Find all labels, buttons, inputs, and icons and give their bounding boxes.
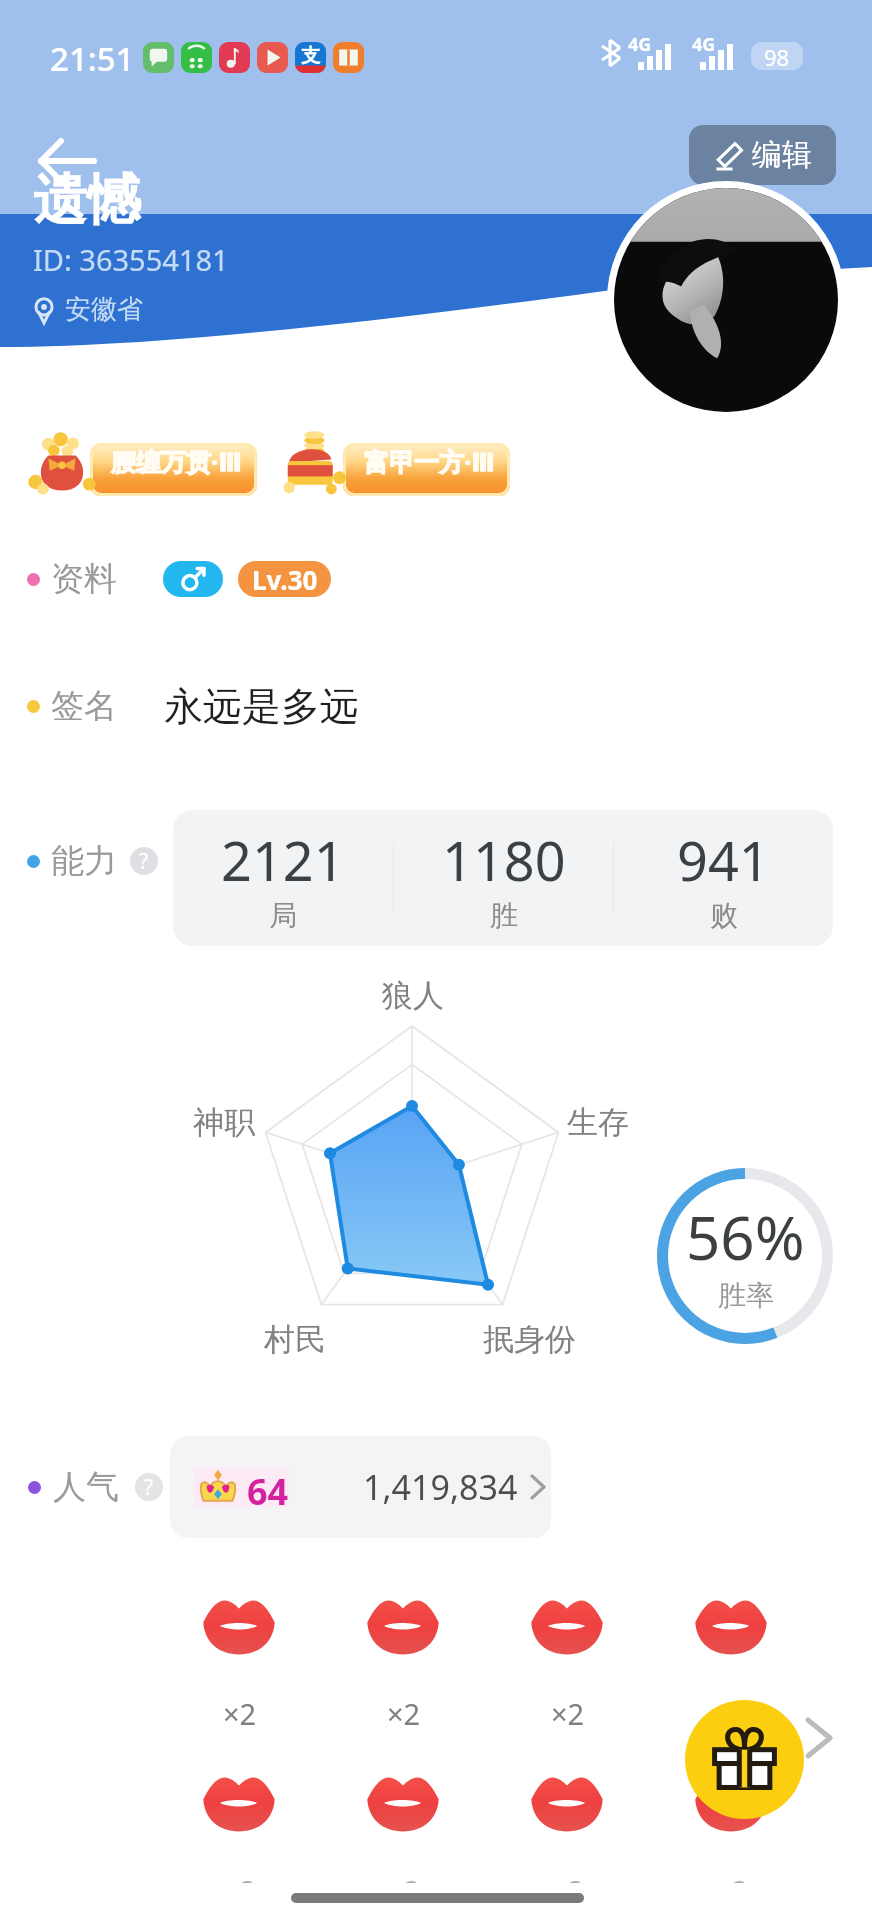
staticText: 生存	[567, 1103, 629, 1142]
staticText: 胜率	[718, 1278, 774, 1313]
staticText: Lv.30	[252, 562, 318, 597]
staticText: ID: 363554181	[33, 240, 229, 279]
staticText: ?	[144, 1473, 154, 1501]
button[interactable]: Help about ability	[130, 847, 158, 875]
button[interactable]: Help about popularity	[135, 1473, 163, 1501]
staticText: ×2	[223, 1872, 257, 1883]
staticText: 签名	[51, 685, 117, 727]
staticText: 21:51	[50, 36, 135, 81]
staticText: 村民	[264, 1320, 326, 1359]
button[interactable]: Back	[22, 131, 112, 191]
staticText: 安徽省	[65, 293, 143, 326]
button[interactable]: 腰缠万贯·Ⅲ	[28, 424, 278, 496]
staticText: 神职	[193, 1103, 255, 1142]
staticText: ×2	[715, 1872, 749, 1883]
staticText: 能力	[51, 840, 117, 882]
staticText: 4G	[692, 32, 716, 57]
staticText: 1180	[442, 823, 566, 897]
staticText: 2121	[221, 823, 345, 897]
button[interactable]: 富甲一方·Ⅲ	[281, 424, 531, 496]
staticText: 资料	[51, 558, 117, 600]
staticText: 遗憾	[33, 166, 141, 234]
staticText: 98	[764, 42, 790, 70]
staticText: 1,419,834	[363, 1464, 518, 1510]
button[interactable]: Send gift	[685, 1700, 804, 1819]
staticText: 编辑	[752, 136, 812, 174]
button[interactable]: 编辑	[689, 125, 836, 185]
staticText: ×2	[223, 1694, 257, 1733]
staticText: 64	[247, 1467, 289, 1507]
staticText: ×2	[387, 1872, 421, 1883]
staticText: 人气	[53, 1466, 119, 1508]
staticText: 抿身份	[483, 1320, 576, 1359]
staticText: ×2	[551, 1694, 585, 1733]
staticText: 胜	[490, 898, 518, 933]
staticText: 败	[710, 898, 738, 933]
staticText: ×2	[387, 1694, 421, 1733]
staticText: ?	[139, 847, 149, 875]
staticText: 富甲一方·Ⅲ	[349, 444, 510, 478]
button[interactable]: Profile photo	[607, 181, 845, 419]
button[interactable]: 64	[170, 1436, 551, 1538]
staticText: ×2	[551, 1872, 585, 1883]
staticText: 腰缠万贯·Ⅲ	[96, 444, 257, 478]
staticText: 狼人	[382, 976, 444, 1015]
staticText: 4G	[628, 32, 652, 57]
staticText: 56%	[686, 1196, 805, 1278]
staticText: ×2	[715, 1694, 749, 1733]
staticText: 支	[301, 44, 320, 68]
staticText: 941	[677, 823, 770, 897]
staticText: 局	[269, 898, 297, 933]
staticText: 永远是多远	[164, 682, 359, 731]
